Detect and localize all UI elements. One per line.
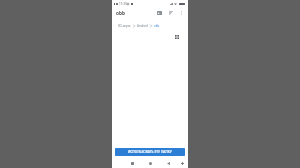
button[interactable]: Home (145, 158, 155, 168)
button[interactable]: Sort (165, 7, 176, 18)
button[interactable]: Grid view (154, 7, 165, 18)
staticText: 11:35 (119, 2, 127, 6)
button[interactable]: Grid view (173, 33, 180, 40)
staticText: ИСПОЛЬЗОВАТЬ ЭТУ ПАПКУ (128, 150, 172, 154)
button[interactable]: obb (154, 24, 160, 28)
staticText: obb (116, 10, 125, 16)
staticText: obb (154, 24, 160, 28)
button[interactable]: Back (163, 158, 173, 168)
button[interactable]: Android (137, 24, 148, 28)
button[interactable]: ИСПОЛЬЗОВАТЬ ЭТУ ПАПКУ (115, 148, 185, 156)
button[interactable]: SD-карта (118, 24, 131, 28)
staticText: SD-карта (118, 24, 131, 28)
staticText: Android (137, 24, 148, 28)
button[interactable]: More options (176, 7, 187, 18)
button[interactable]: Recents (127, 158, 137, 168)
button[interactable]: Hide keyboard (177, 158, 187, 168)
